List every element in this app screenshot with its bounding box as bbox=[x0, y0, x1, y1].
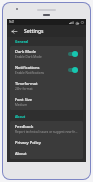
button[interactable]: Timeformat bbox=[10, 78, 83, 94]
staticText: Privacy Policy bbox=[15, 140, 41, 145]
button[interactable]: Back bbox=[10, 27, 19, 36]
staticText: Font Size bbox=[15, 97, 33, 102]
button[interactable]: Font Size bbox=[10, 94, 83, 110]
staticText: Dark Mode bbox=[15, 49, 37, 54]
staticText: Feedback bbox=[15, 124, 34, 129]
staticText: Report technical issues or suggest new f… bbox=[15, 130, 78, 134]
button[interactable]: Notifications bbox=[10, 62, 83, 78]
staticText: Settings bbox=[24, 28, 44, 35]
staticText: Enable Notifications bbox=[15, 71, 45, 75]
staticText: About bbox=[15, 114, 26, 119]
staticText: 9:41 bbox=[9, 20, 15, 24]
button[interactable]: Dark Mode bbox=[10, 46, 83, 62]
staticText: General bbox=[15, 39, 29, 44]
button[interactable]: About bbox=[10, 148, 83, 159]
staticText: Timeformat bbox=[15, 81, 38, 86]
button[interactable]: Feedback bbox=[10, 121, 83, 137]
staticText: 24hr format bbox=[15, 87, 33, 91]
staticText: Enable Dark Mode bbox=[15, 55, 42, 59]
staticText: Notifications bbox=[15, 65, 40, 70]
button[interactable]: Privacy Policy bbox=[10, 137, 83, 148]
staticText: About bbox=[15, 151, 27, 156]
staticText: Medium bbox=[15, 103, 28, 107]
